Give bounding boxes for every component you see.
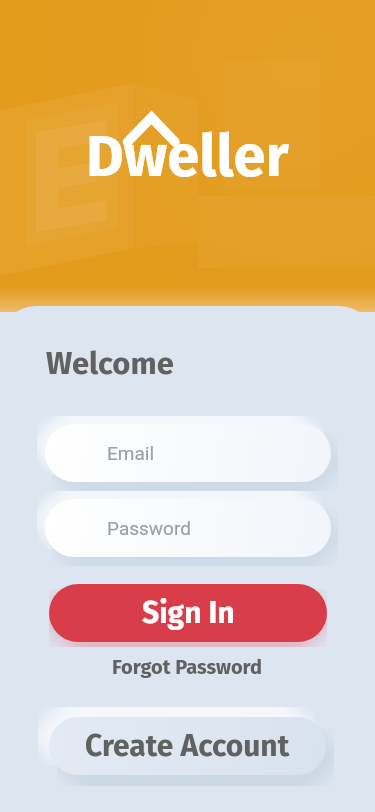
button[interactable]: Password	[45, 499, 331, 557]
staticText: Welcome	[46, 345, 174, 382]
button[interactable]: Forgot Password	[106, 649, 269, 685]
button[interactable]: Create Account	[49, 717, 326, 775]
staticText: Dweller	[86, 122, 289, 192]
staticText: Create Account	[85, 728, 290, 764]
button[interactable]: Sign In	[49, 584, 327, 642]
staticText: Email	[107, 442, 155, 464]
staticText: Sign In	[142, 595, 235, 631]
button[interactable]: Email	[45, 424, 331, 482]
staticText: Password	[107, 517, 191, 539]
